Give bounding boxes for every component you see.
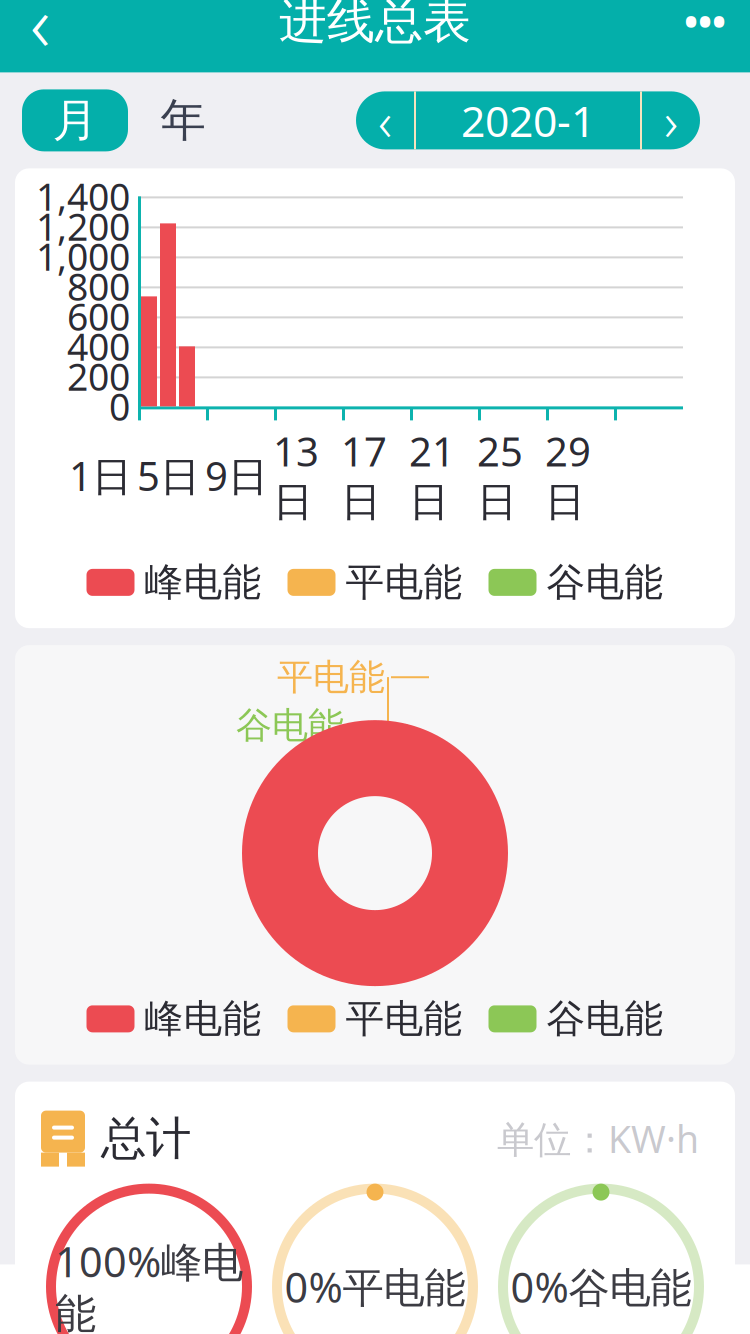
staticText: 月 [52,92,97,148]
staticText: 0%谷电能 [510,1259,691,1314]
staticText: 总计 [101,1111,191,1166]
staticText: 0 [109,382,130,431]
staticText: 单位：KW·h [497,1114,699,1163]
staticText: 1日 [69,449,132,502]
staticText: ‹ [30,0,50,73]
staticText: 2020-1 [461,92,595,149]
staticText: 400 [67,322,130,371]
button[interactable]: Next month [642,91,700,149]
staticText: 1,400 [36,172,130,221]
staticText: 5日 [137,449,200,502]
staticText: 峰电能 [144,995,261,1043]
staticText: ••• [684,0,726,46]
staticText: 600 [67,292,130,341]
staticText: 峰电能 [144,559,261,606]
staticText: 平电能 [277,655,385,699]
staticText: 1,200 [36,202,130,251]
staticText: 进线总表 [279,0,471,51]
staticText: 0%平电能 [284,1259,465,1314]
staticText: 800 [67,262,130,311]
staticText: 平电能 [345,559,462,606]
button[interactable]: Back [0,0,80,71]
staticText: 1,000 [36,232,130,281]
staticText: 13日 [273,424,319,527]
button[interactable]: 年 [146,89,220,151]
staticText: 平电能 [345,995,462,1043]
staticText: › [664,85,678,156]
staticText: 9日 [205,449,268,502]
staticText: 200 [67,352,130,401]
button[interactable]: More [660,0,750,71]
staticText: 谷电能 [236,703,344,747]
staticText: 21日 [409,424,455,527]
button[interactable]: 2020-1 [414,91,642,149]
button[interactable]: Previous month [356,91,414,149]
staticText: 100%峰电能 [55,1234,243,1334]
staticText: 谷电能 [546,995,663,1043]
staticText: 谷电能 [546,559,663,606]
staticText: 年 [160,92,205,148]
staticText: ‹ [378,85,392,156]
staticText: 25日 [477,424,523,527]
button[interactable]: 月 [22,89,128,151]
staticText: 29日 [545,424,591,527]
staticText: 17日 [341,424,387,527]
